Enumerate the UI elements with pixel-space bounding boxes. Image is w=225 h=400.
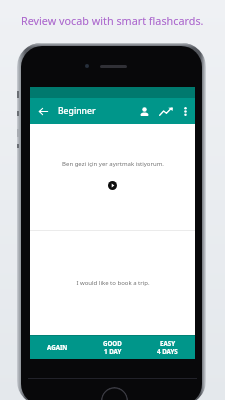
button[interactable]: Statistics (155, 100, 177, 122)
button[interactable]: Home (101, 387, 128, 400)
button[interactable]: More options (176, 102, 194, 120)
button[interactable]: Profile (133, 100, 155, 122)
button[interactable]: EASY (140, 335, 195, 359)
staticText: 4 DAYS (157, 347, 178, 355)
button[interactable]: AGAIN (30, 335, 85, 359)
staticText: EASY (160, 339, 176, 347)
button[interactable]: GOOD (85, 335, 140, 359)
button[interactable]: Play audio (108, 181, 117, 190)
staticText: AGAIN (47, 343, 68, 351)
staticText: I would like to book a trip. (76, 279, 150, 287)
staticText: 1 DAY (104, 347, 122, 355)
staticText: Beginner (58, 105, 96, 117)
button[interactable]: Back (30, 98, 56, 124)
staticText: GOOD (103, 339, 122, 347)
staticText: Review vocab with smart flashcards. (21, 13, 204, 28)
staticText: Ben gezi için yer ayırtmak istiyorum. (62, 160, 164, 168)
